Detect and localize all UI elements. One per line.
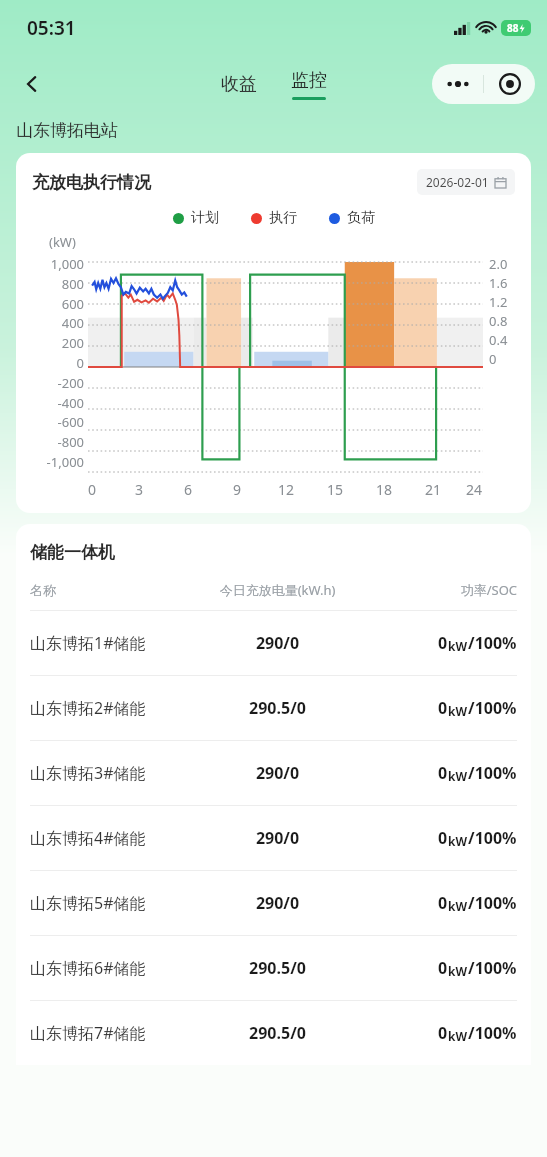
staticText: 290.5/0 [178, 1022, 377, 1044]
staticText: /100% [468, 957, 517, 979]
staticText: 山东博拓5#储能 [30, 892, 178, 914]
staticText: 山东博拓6#储能 [30, 957, 178, 979]
staticText: 290/0 [178, 827, 377, 849]
staticText: 0 [438, 1022, 448, 1044]
button[interactable]: Back [12, 64, 52, 104]
staticText: kW [448, 638, 468, 654]
staticText: 290.5/0 [178, 957, 377, 979]
staticText: 山东博拓1#储能 [30, 632, 178, 654]
button[interactable]: 山东博拓6#储能 [16, 936, 531, 1000]
button[interactable]: 2026-02-01 [417, 169, 515, 195]
staticText: /100% [468, 697, 517, 719]
button[interactable]: 山东博拓4#储能 [16, 806, 531, 870]
staticText: 2.0 [489, 255, 508, 273]
staticText: 负荷 [347, 209, 375, 227]
staticText: kW [448, 1028, 468, 1044]
staticText: 0 [438, 827, 448, 849]
staticText: -600 [57, 413, 84, 431]
staticText: (kW) [49, 233, 76, 251]
staticText: 24 [466, 480, 483, 499]
staticText: /100% [468, 762, 517, 784]
staticText: kW [448, 898, 468, 914]
staticText: 9 [233, 480, 242, 499]
staticText: /100% [468, 827, 517, 849]
staticText: 山东博拓7#储能 [30, 1022, 178, 1044]
staticText: 12 [278, 480, 295, 499]
staticText: 名称 [30, 582, 178, 598]
staticText: 执行 [269, 209, 297, 227]
staticText: 15 [327, 480, 344, 499]
button[interactable]: More options [432, 64, 483, 104]
staticText: 0.4 [489, 331, 508, 349]
staticText: 88 [507, 21, 519, 35]
staticText: 1.6 [489, 274, 508, 292]
staticText: /100% [468, 632, 517, 654]
staticText: 290/0 [178, 762, 377, 784]
staticText: kW [448, 833, 468, 849]
staticText: 0 [76, 354, 84, 372]
staticText: kW [448, 963, 468, 979]
staticText: -400 [57, 394, 84, 412]
staticText: 储能一体机 [30, 542, 115, 563]
staticText: 6 [184, 480, 193, 499]
staticText: 监控 [291, 69, 327, 92]
staticText: 1,000 [50, 255, 84, 273]
staticText: 400 [61, 314, 84, 332]
staticText: 18 [376, 480, 393, 499]
staticText: 200 [61, 334, 84, 352]
staticText: -200 [57, 374, 84, 392]
button[interactable]: 收益 [211, 67, 267, 102]
staticText: /100% [468, 1022, 517, 1044]
staticText: 山东博拓电站 [16, 120, 118, 141]
staticText: 今日充放电量(kW.h) [178, 581, 377, 599]
staticText: -1,000 [46, 453, 84, 471]
staticText: 0 [88, 480, 97, 499]
button[interactable]: 山东博拓5#储能 [16, 871, 531, 935]
staticText: 3 [135, 480, 144, 499]
staticText: 0 [438, 632, 448, 654]
staticText: 0 [438, 697, 448, 719]
staticText: 2026-02-01 [426, 174, 489, 190]
button[interactable]: 监控 [281, 67, 337, 102]
button[interactable]: 山东博拓2#储能 [16, 676, 531, 740]
staticText: 山东博拓4#储能 [30, 827, 178, 849]
staticText: 290/0 [178, 892, 377, 914]
staticText: 0 [438, 892, 448, 914]
staticText: 计划 [191, 209, 219, 227]
staticText: 山东博拓3#储能 [30, 762, 178, 784]
staticText: /100% [468, 892, 517, 914]
staticText: 收益 [221, 73, 257, 96]
staticText: 800 [61, 275, 84, 293]
staticText: 功率/SOC [377, 581, 517, 599]
staticText: -800 [57, 433, 84, 451]
button[interactable]: 山东博拓3#储能 [16, 741, 531, 805]
staticText: 充放电执行情况 [32, 172, 151, 193]
staticText: 山东博拓2#储能 [30, 697, 178, 719]
button[interactable]: 山东博拓1#储能 [16, 611, 531, 675]
staticText: 0 [438, 957, 448, 979]
staticText: kW [448, 703, 468, 719]
staticText: 21 [425, 480, 442, 499]
staticText: kW [448, 768, 468, 784]
staticText: 0 [489, 350, 497, 368]
staticText: 1.2 [489, 293, 508, 311]
button[interactable]: Capture [484, 64, 535, 104]
staticText: 0.8 [489, 312, 508, 330]
staticText: 0 [438, 762, 448, 784]
button[interactable]: 山东博拓7#储能 [16, 1001, 531, 1065]
staticText: 290/0 [178, 632, 377, 654]
staticText: 600 [61, 295, 84, 313]
staticText: 290.5/0 [178, 697, 377, 719]
staticText: 05:31 [27, 15, 76, 41]
